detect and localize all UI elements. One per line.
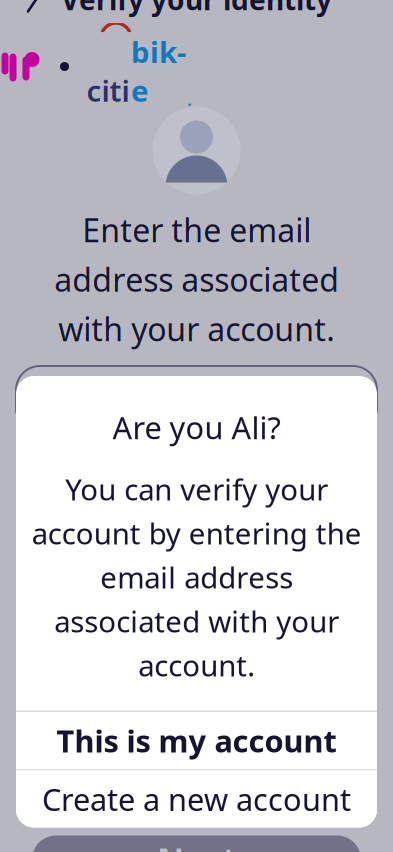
button[interactable]: Back (10, 0, 54, 21)
button[interactable]: This is my account (16, 712, 377, 769)
staticText: Next (157, 837, 236, 852)
staticText: This is my account (56, 720, 336, 761)
staticText: Create a new account (42, 779, 351, 819)
staticText: Verify your identity (61, 0, 332, 18)
staticText: Enter the email address associated with … (54, 208, 339, 350)
staticText: bike (131, 32, 186, 110)
button[interactable]: Create a new account (16, 770, 377, 827)
staticText: Are you Ali? (112, 407, 280, 448)
button[interactable]: Next (32, 835, 361, 852)
staticText: citi (86, 71, 129, 110)
staticText: . (187, 90, 191, 110)
staticText: You can verify your account by entering … (31, 470, 361, 684)
